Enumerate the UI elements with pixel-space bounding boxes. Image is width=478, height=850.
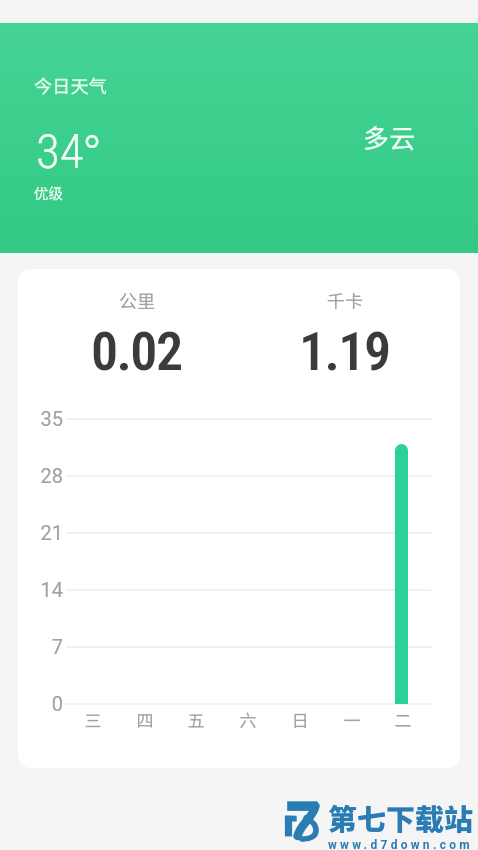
button[interactable]: 二 bbox=[379, 702, 427, 732]
staticText: 21 bbox=[19, 521, 63, 544]
staticText: 35 bbox=[19, 407, 63, 430]
button[interactable]: 一 bbox=[328, 702, 376, 732]
staticText: 28 bbox=[19, 464, 63, 487]
button[interactable]: 三 bbox=[69, 702, 117, 732]
button[interactable]: 六 bbox=[224, 702, 272, 732]
staticText: www.d7down.com bbox=[328, 838, 474, 850]
staticText: 34 bbox=[36, 123, 84, 180]
staticText: ° bbox=[82, 125, 103, 187]
other: Logo bbox=[283, 798, 321, 838]
staticText: 优级 bbox=[34, 182, 63, 203]
staticText: 日 bbox=[276, 707, 324, 732]
staticText: 7 bbox=[19, 635, 63, 658]
staticText: 14 bbox=[19, 578, 63, 601]
staticText: 今日天气 bbox=[34, 72, 107, 98]
staticText: 第七下载站 bbox=[328, 796, 474, 838]
staticText: 千卡 bbox=[327, 287, 363, 313]
button[interactable]: 公里 bbox=[46, 277, 226, 387]
button[interactable]: 今日天气 bbox=[0, 23, 478, 253]
button[interactable]: 日 bbox=[276, 702, 324, 732]
staticText: 1.19 bbox=[299, 320, 390, 383]
button[interactable]: 千卡 bbox=[254, 277, 434, 387]
staticText: 三 bbox=[69, 707, 117, 732]
staticText: 0 bbox=[19, 692, 63, 715]
staticText: 五 bbox=[172, 707, 220, 732]
staticText: 一 bbox=[328, 707, 376, 732]
button[interactable]: 五 bbox=[172, 702, 220, 732]
staticText: 六 bbox=[224, 707, 272, 732]
staticText: 0.02 bbox=[91, 320, 182, 383]
staticText: 公里 bbox=[119, 287, 155, 313]
button[interactable]: 四 bbox=[121, 702, 169, 732]
staticText: 二 bbox=[379, 707, 427, 732]
staticText: 多云 bbox=[363, 118, 416, 156]
staticText: 四 bbox=[121, 707, 169, 732]
